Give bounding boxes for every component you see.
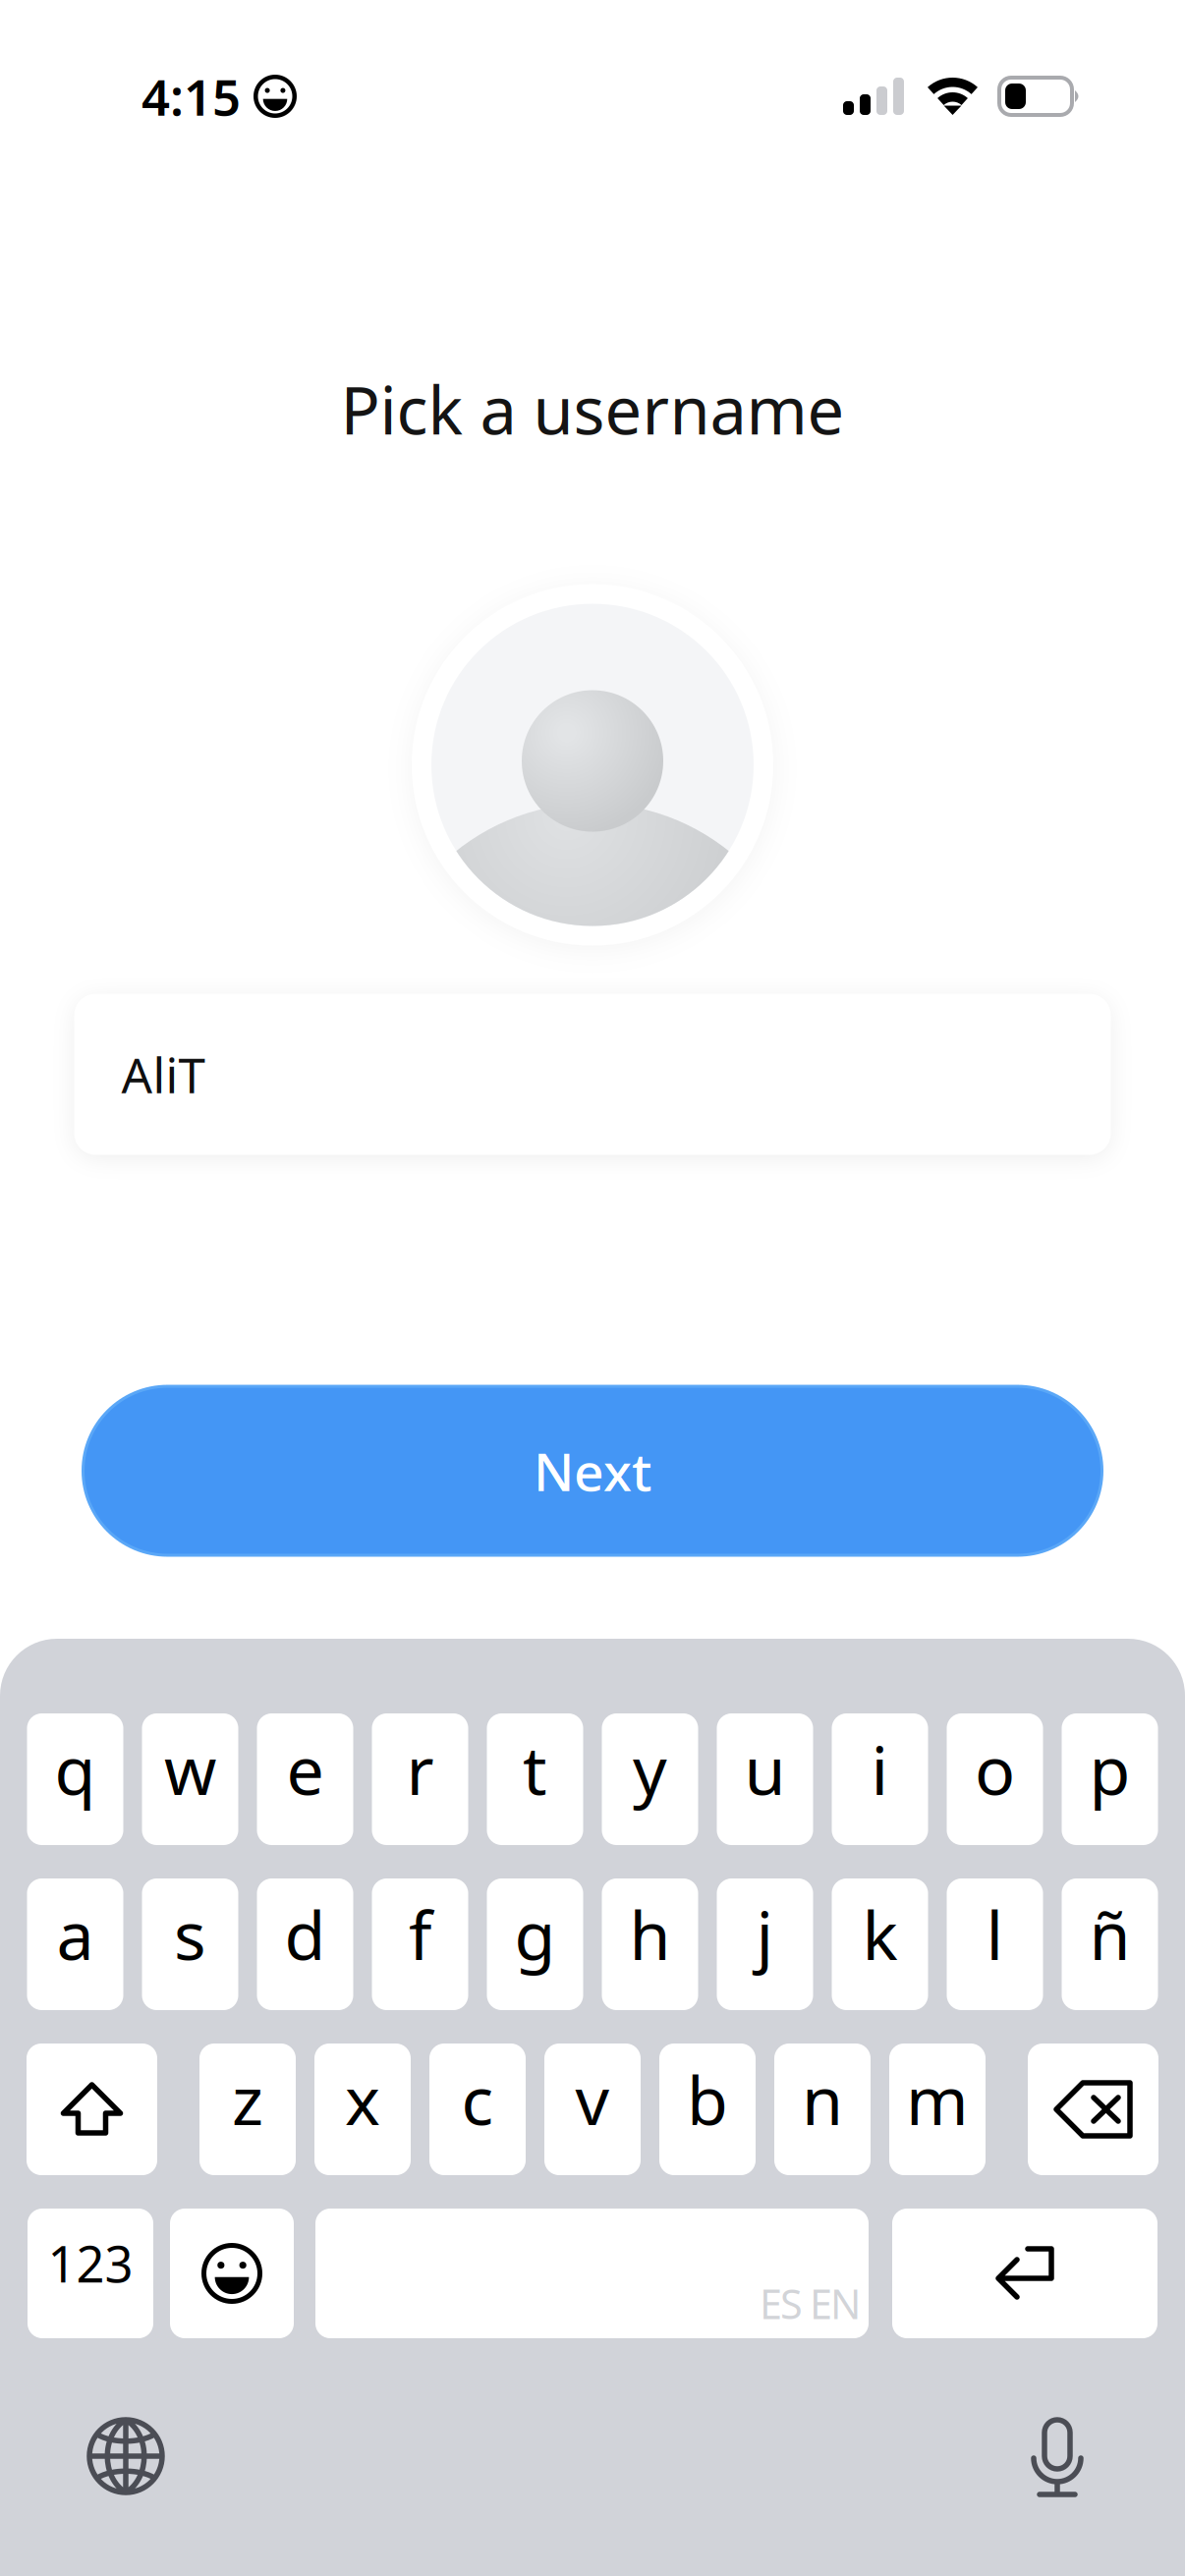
staticText: 4:15 (141, 63, 241, 129)
staticText: Pick a username (340, 365, 845, 452)
staticText: u (744, 1725, 786, 1813)
staticText: p (1089, 1725, 1130, 1813)
staticText: t (523, 1725, 547, 1813)
button[interactable]: x (314, 2044, 411, 2175)
button[interactable]: j (717, 1878, 813, 2010)
staticText: y (633, 1725, 667, 1813)
button[interactable]: ñ (1062, 1878, 1158, 2010)
staticText: h (629, 1890, 671, 1978)
button[interactable]: a (27, 1878, 123, 2010)
staticText: r (406, 1725, 434, 1813)
staticText: e (286, 1725, 324, 1813)
button[interactable]: 123 (28, 2209, 153, 2338)
button[interactable]: z (199, 2044, 296, 2175)
button[interactable]: p (1062, 1713, 1158, 1845)
staticText: f (409, 1890, 431, 1978)
button[interactable]: n (774, 2044, 871, 2175)
staticText: x (345, 2055, 380, 2143)
button[interactable]: Next keyboard (86, 2417, 165, 2495)
staticText: w (164, 1725, 216, 1813)
button[interactable]: k (832, 1878, 928, 2010)
button[interactable]: v (544, 2044, 641, 2175)
button[interactable]: r (372, 1713, 468, 1845)
button[interactable]: u (717, 1713, 813, 1845)
button[interactable]: Dictation (1031, 2413, 1086, 2499)
button[interactable]: Emoji (170, 2209, 294, 2338)
button[interactable]: h (602, 1878, 698, 2010)
button[interactable]: c (429, 2044, 526, 2175)
button[interactable]: f (372, 1878, 468, 2010)
staticText: d (284, 1890, 326, 1978)
button[interactable]: s (142, 1878, 238, 2010)
button[interactable]: q (27, 1713, 123, 1845)
staticText: Next (534, 1436, 651, 1506)
staticText: j (756, 1890, 774, 1978)
staticText: 123 (48, 2230, 133, 2296)
staticText: ñ (1089, 1890, 1130, 1978)
button[interactable]: y (602, 1713, 698, 1845)
button[interactable]: g (487, 1878, 583, 2010)
staticText: a (56, 1890, 94, 1978)
button[interactable]: Next (82, 1385, 1103, 1557)
button[interactable]: t (487, 1713, 583, 1845)
staticText: q (55, 1725, 96, 1813)
staticText: m (906, 2055, 969, 2143)
staticText: s (174, 1890, 206, 1978)
button[interactable]: Space (315, 2209, 869, 2338)
staticText: AliT (121, 1042, 205, 1107)
staticText: i (871, 1725, 889, 1813)
staticText: b (687, 2055, 728, 2143)
staticText: o (975, 1725, 1015, 1813)
button[interactable]: m (889, 2044, 986, 2175)
button[interactable]: Shift (27, 2044, 157, 2175)
button[interactable]: AliT (74, 994, 1111, 1155)
button[interactable]: d (257, 1878, 353, 2010)
staticText: k (862, 1890, 898, 1978)
button[interactable]: l (947, 1878, 1043, 2010)
staticText: ES EN (760, 2276, 861, 2330)
staticText: v (575, 2055, 610, 2143)
button[interactable]: b (659, 2044, 756, 2175)
staticText: l (986, 1890, 1004, 1978)
button[interactable]: i (832, 1713, 928, 1845)
staticText: z (232, 2055, 263, 2143)
button[interactable]: o (947, 1713, 1043, 1845)
button[interactable]: Return (892, 2209, 1157, 2338)
button[interactable]: w (142, 1713, 238, 1845)
staticText: n (802, 2055, 843, 2143)
staticText: c (461, 2055, 494, 2143)
button[interactable]: Delete (1028, 2044, 1158, 2175)
button[interactable]: e (257, 1713, 353, 1845)
staticText: g (514, 1890, 556, 1978)
